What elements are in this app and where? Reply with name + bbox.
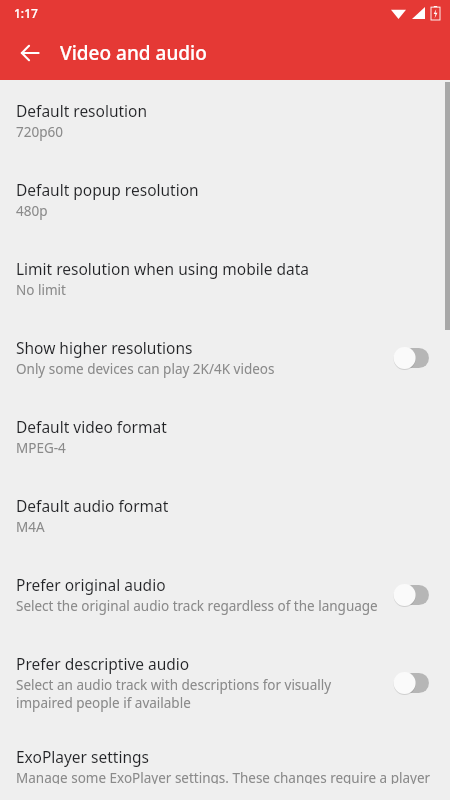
button[interactable]: ExoPlayer settings xyxy=(0,732,450,800)
staticText: 720p60 xyxy=(16,123,63,141)
button[interactable]: Back xyxy=(8,31,52,75)
staticText: Video and audio xyxy=(60,40,207,66)
staticText: Default audio format xyxy=(16,495,169,516)
button[interactable]: Prefer descriptive audio xyxy=(0,635,450,732)
button[interactable]: Show higher resolutions xyxy=(0,319,450,398)
staticText: Prefer original audio xyxy=(16,574,166,595)
button[interactable]: Default video format xyxy=(0,398,450,477)
staticText: Default popup resolution xyxy=(16,179,199,200)
button[interactable]: Toggle Prefer descriptive audio xyxy=(390,668,436,698)
staticText: Show higher resolutions xyxy=(16,337,193,358)
button[interactable]: Prefer original audio xyxy=(0,556,450,635)
staticText: Default resolution xyxy=(16,100,148,121)
button[interactable]: Default resolution xyxy=(0,80,450,161)
staticText: Default video format xyxy=(16,416,167,437)
button[interactable]: Toggle Show higher resolutions xyxy=(390,343,436,373)
staticText: No limit xyxy=(16,281,66,299)
staticText: Prefer descriptive audio xyxy=(16,653,190,674)
staticText: 1:17 xyxy=(14,5,38,21)
staticText: Only some devices can play 2K/4K videos xyxy=(16,360,275,378)
staticText: ExoPlayer settings xyxy=(16,746,149,767)
staticText: 480p xyxy=(16,202,48,220)
button[interactable]: Default audio format xyxy=(0,477,450,556)
staticText: Select the original audio track regardle… xyxy=(16,597,378,615)
staticText: Manage some ExoPlayer settings. These ch… xyxy=(16,769,436,784)
staticText: Select an audio track with descriptions … xyxy=(16,676,380,712)
staticText: Limit resolution when using mobile data xyxy=(16,258,309,279)
staticText: M4A xyxy=(16,518,45,536)
button[interactable]: Default popup resolution xyxy=(0,161,450,240)
staticText: MPEG-4 xyxy=(16,439,66,457)
button[interactable]: Toggle Prefer original audio xyxy=(390,580,436,610)
button[interactable]: Limit resolution when using mobile data xyxy=(0,240,450,319)
